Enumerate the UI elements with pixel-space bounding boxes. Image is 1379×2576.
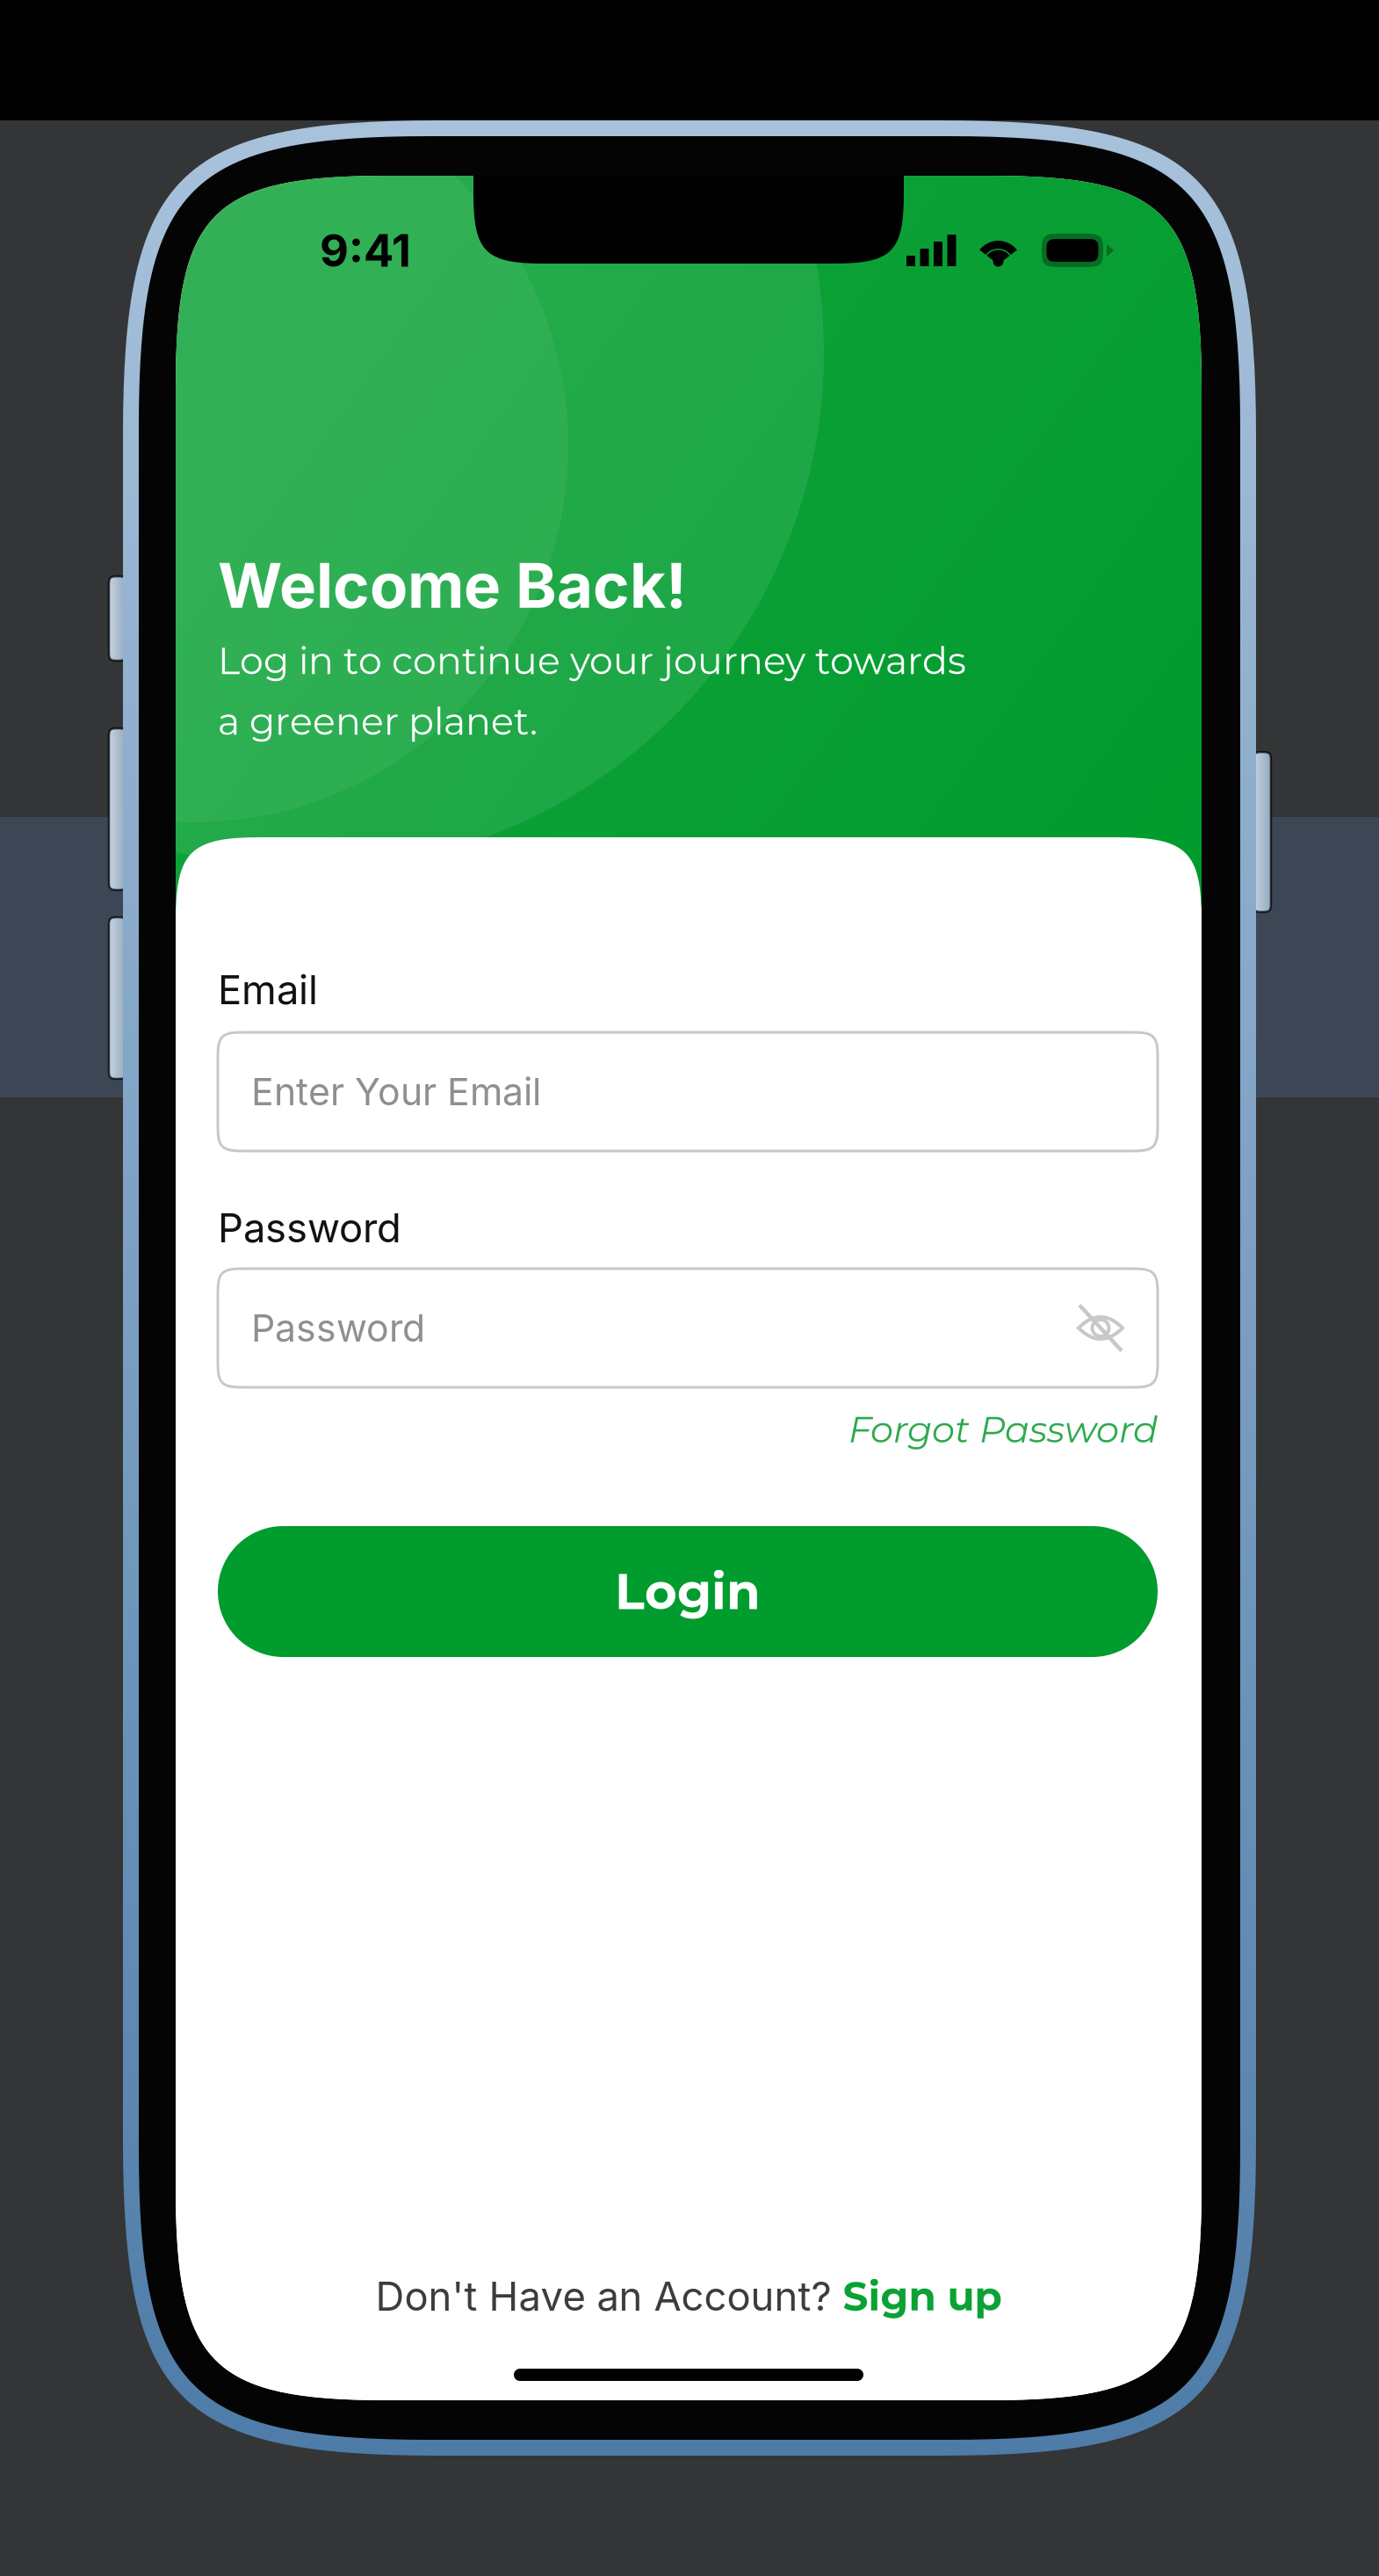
staticText: Welcome Back! [218, 548, 687, 623]
staticText: Enter Your Email [251, 1069, 541, 1114]
staticText: Forgot Password [848, 1407, 1158, 1452]
button[interactable]: Don't Have an Account? [176, 2254, 1202, 2338]
staticText: a greener planet. [218, 698, 538, 744]
staticText: Don't Have an Account? [375, 2272, 843, 2320]
button[interactable]: Login [218, 1526, 1158, 1657]
staticText: Password [218, 1204, 401, 1252]
staticText: Sign up [843, 2272, 1002, 2321]
staticText: Log in to continue your journey towards [218, 638, 966, 684]
button[interactable]: Show password [1077, 1304, 1124, 1352]
staticText: Password [251, 1305, 425, 1351]
staticText: Email [218, 966, 318, 1014]
button[interactable]: Forgot Password [218, 1401, 1158, 1458]
staticText: 9:41 [320, 223, 411, 277]
staticText: Login [615, 1562, 761, 1622]
